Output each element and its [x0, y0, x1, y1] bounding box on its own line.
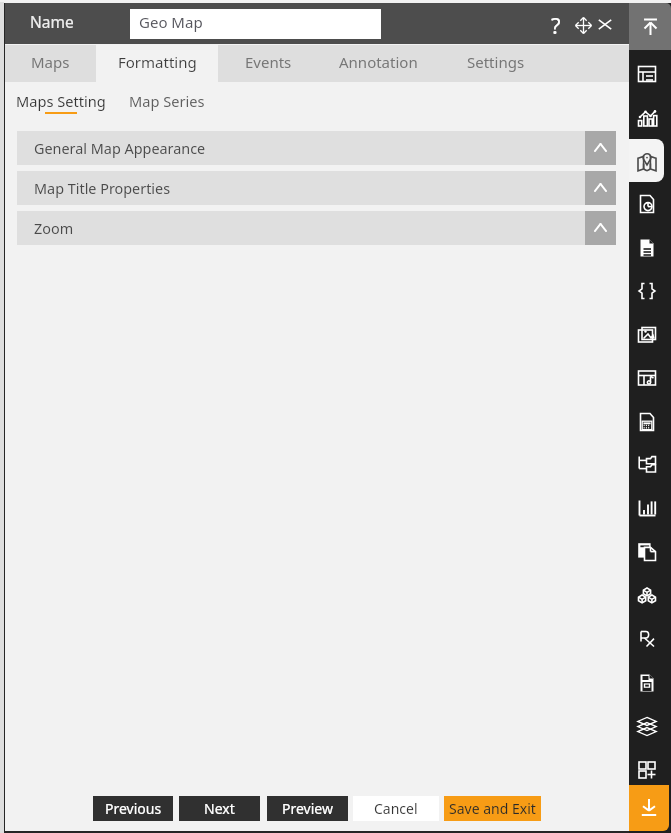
- button[interactable]: Collapse panel: [629, 3, 671, 50]
- staticText: Preview: [282, 799, 333, 818]
- staticText: General Map Appearance: [34, 139, 206, 159]
- staticText: Maps: [31, 52, 70, 72]
- button[interactable]: Layers: [629, 704, 664, 747]
- button[interactable]: Help: [543, 11, 569, 37]
- staticText: Save and Exit: [449, 799, 536, 818]
- button[interactable]: Hierarchy: [629, 443, 664, 486]
- button[interactable]: Prescriptions: [629, 617, 664, 660]
- staticText: Settings: [467, 52, 525, 72]
- button[interactable]: Previous: [93, 796, 173, 821]
- button[interactable]: Page layout: [629, 52, 664, 95]
- button[interactable]: Tables: [629, 356, 664, 399]
- button[interactable]: Move dialog: [570, 11, 596, 37]
- button[interactable]: Preview: [267, 796, 348, 821]
- button[interactable]: Cancel: [353, 796, 439, 821]
- button[interactable]: Map Series: [129, 88, 207, 114]
- button[interactable]: Images: [629, 313, 664, 356]
- button[interactable]: Components: [629, 574, 664, 617]
- staticText: Events: [245, 52, 292, 72]
- staticText: Maps Setting: [16, 91, 106, 111]
- button[interactable]: Documents: [629, 530, 664, 573]
- button[interactable]: Bar chart: [629, 487, 664, 530]
- button[interactable]: Collapse Map Title Properties: [585, 171, 616, 205]
- button[interactable]: Formatting: [96, 45, 218, 82]
- button[interactable]: Charts: [629, 95, 664, 138]
- button[interactable]: Collapse General Map Appearance: [585, 131, 616, 165]
- staticText: ?: [551, 10, 561, 36]
- staticText: Cancel: [374, 799, 418, 818]
- staticText: Zoom: [34, 219, 74, 239]
- button[interactable]: Settings: [439, 45, 552, 82]
- button[interactable]: Maps: [5, 45, 96, 82]
- staticText: Annotation: [339, 52, 418, 72]
- button[interactable]: Maps: [629, 139, 664, 182]
- button[interactable]: Geo Map: [130, 9, 381, 39]
- button[interactable]: Text document: [629, 226, 664, 269]
- button[interactable]: Save and Exit: [444, 796, 541, 821]
- staticText: Next: [204, 799, 235, 818]
- button[interactable]: Map Title Properties: [17, 171, 616, 205]
- staticText: Name: [30, 11, 74, 32]
- button[interactable]: Collapse Zoom: [585, 211, 616, 245]
- staticText: Previous: [105, 799, 162, 818]
- button[interactable]: Events: [218, 45, 318, 82]
- button[interactable]: Annotation: [318, 45, 439, 82]
- button[interactable]: Add widget: [629, 748, 664, 791]
- staticText: Map Title Properties: [34, 179, 171, 199]
- button[interactable]: Saved reports: [629, 661, 664, 704]
- button[interactable]: Data sheet: [629, 400, 664, 443]
- button[interactable]: General Map Appearance: [17, 131, 616, 165]
- button[interactable]: Close: [592, 11, 618, 37]
- staticText: Geo Map: [139, 12, 203, 32]
- staticText: Formatting: [118, 52, 197, 72]
- button[interactable]: Zoom: [17, 211, 616, 245]
- staticText: Map Series: [129, 91, 205, 111]
- button[interactable]: Code: [629, 269, 664, 312]
- button[interactable]: Download: [629, 785, 669, 831]
- button[interactable]: Pie report: [629, 182, 664, 225]
- button[interactable]: Maps Setting: [16, 88, 108, 118]
- button[interactable]: Next: [179, 796, 260, 821]
